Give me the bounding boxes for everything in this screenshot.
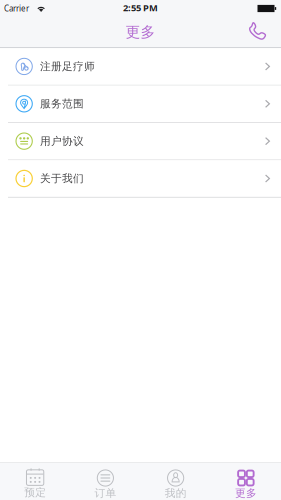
staticText: 关于我们: [40, 172, 84, 185]
button[interactable]: 注册足疗师: [0, 48, 281, 86]
staticText: 2:55 PM: [123, 1, 158, 14]
staticText: 用户协议: [40, 135, 84, 148]
button[interactable]: 我的: [140, 463, 211, 500]
staticText: 预定: [24, 486, 46, 499]
button[interactable]: 订单: [70, 463, 140, 500]
button[interactable]: 更多: [211, 463, 281, 500]
button[interactable]: Call: [242, 18, 274, 46]
staticText: 注册足疗师: [40, 60, 95, 73]
staticText: 更多: [235, 487, 257, 500]
staticText: 订单: [94, 487, 116, 500]
staticText: Carrier: [4, 3, 29, 14]
button[interactable]: 服务范围: [0, 86, 281, 123]
button[interactable]: 预定: [0, 463, 70, 500]
staticText: 服务范围: [40, 97, 84, 110]
staticText: 更多: [125, 23, 155, 41]
button[interactable]: 关于我们: [0, 160, 281, 198]
staticText: 我的: [165, 487, 187, 500]
button[interactable]: 用户协议: [0, 123, 281, 160]
